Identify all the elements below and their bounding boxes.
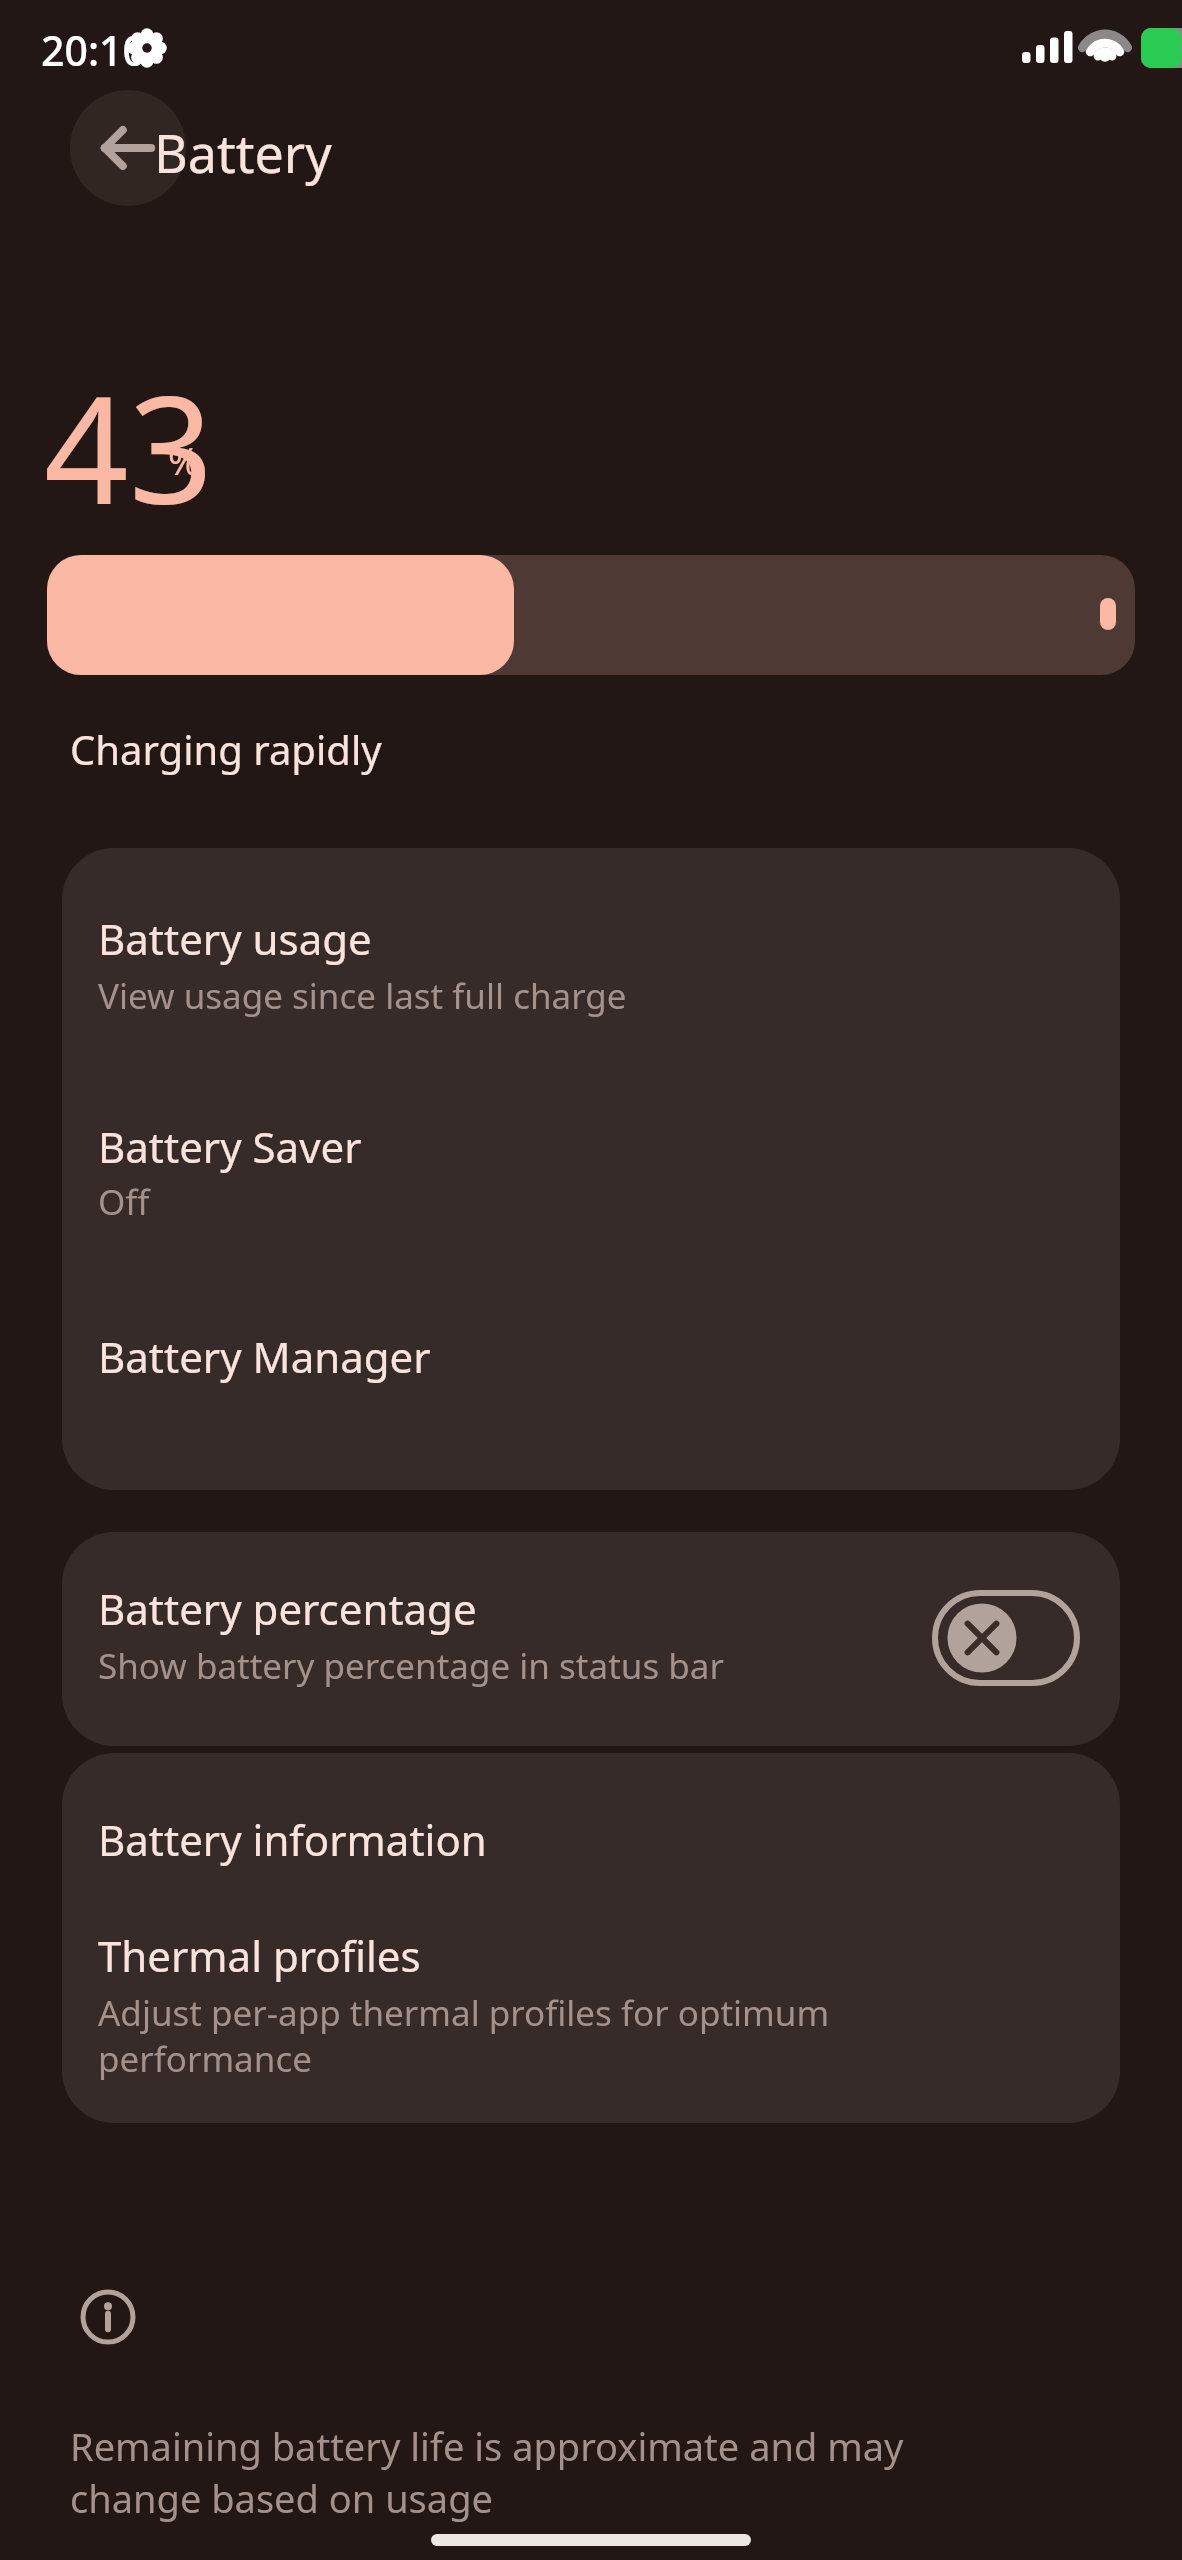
button[interactable]: Battery usage: [62, 848, 1120, 1058]
staticText: Battery: [154, 117, 332, 188]
staticText: Battery Manager: [98, 1328, 431, 1385]
staticText: Battery information: [98, 1811, 487, 1868]
staticText: Remaining battery life is approximate an…: [70, 2420, 904, 2524]
staticText: 43: [44, 346, 214, 548]
button[interactable]: Thermal profiles: [62, 1903, 1120, 2123]
staticText: Off: [98, 1178, 150, 1226]
button[interactable]: Battery information: [62, 1753, 1120, 1903]
button[interactable]: Battery Manager: [62, 1248, 1120, 1490]
button[interactable]: Battery percentage toggle: [932, 1590, 1080, 1686]
staticText: Battery usage: [98, 910, 372, 967]
button[interactable]: Back: [70, 90, 186, 206]
staticText: Thermal profiles: [98, 1927, 421, 1984]
staticText: %: [168, 434, 200, 486]
staticText: 20:10: [41, 22, 146, 78]
staticText: Adjust per-app thermal profiles for opti…: [98, 1989, 830, 2082]
staticText: Charging rapidly: [70, 722, 382, 776]
staticText: Show battery percentage in status bar: [98, 1642, 724, 1690]
staticText: View usage since last full charge: [98, 972, 627, 1020]
button[interactable]: Battery Saver: [62, 1058, 1120, 1248]
staticText: Battery percentage: [98, 1580, 477, 1637]
button[interactable]: Battery percentage: [62, 1532, 1120, 1746]
staticText: Battery Saver: [98, 1118, 362, 1175]
button[interactable]: Settings: [128, 29, 166, 67]
